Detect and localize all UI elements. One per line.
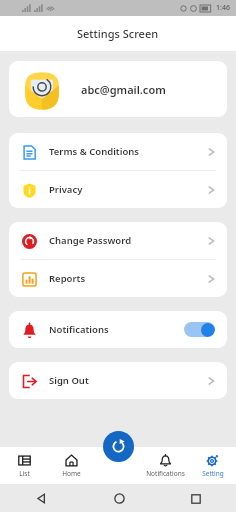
button[interactable]: Notifications [9,311,227,348]
staticText: abc@gmail.com [81,82,166,97]
staticText: Setting [202,469,224,478]
button[interactable]: Notifications [142,447,189,484]
staticText: Settings Screen [77,26,159,41]
button[interactable]: Privacy [9,171,227,208]
staticText: Change Password [49,234,208,247]
staticText: 1:46 [216,3,230,13]
button[interactable]: Change Password [9,222,227,259]
staticText: Reports [49,272,208,285]
button[interactable]: abc@gmail.com [9,61,227,117]
staticText: Home [62,469,81,478]
button[interactable]: Terms & Conditions [9,133,227,170]
button[interactable]: Home [48,447,95,484]
button[interactable]: Reports [9,260,227,297]
button[interactable]: Notifications toggle [184,322,215,337]
button[interactable]: List [0,447,48,484]
staticText: Terms & Conditions [49,145,208,158]
staticText: List [19,469,30,478]
button[interactable]: Refresh [103,431,134,462]
staticText: Sign Out [49,374,208,387]
button[interactable]: Sign Out [9,362,227,399]
staticText: Notifications [146,469,185,478]
button[interactable]: Setting [189,447,236,484]
staticText: Notifications [49,323,184,336]
staticText: Privacy [49,183,208,196]
